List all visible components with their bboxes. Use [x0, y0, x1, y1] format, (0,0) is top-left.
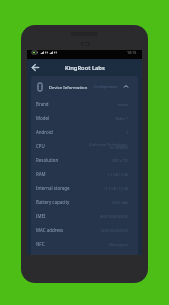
staticText: Redmi 7 — [115, 116, 128, 120]
staticText: Battery capacity — [36, 199, 70, 205]
staticText: Qualcomm Technologies, Inc SDM450 — [88, 142, 128, 150]
staticText: 1080 x 720 — [111, 158, 128, 162]
staticText: 9 — [126, 130, 128, 134]
staticText: Android — [36, 129, 53, 135]
button[interactable]: Resolution — [31, 153, 138, 167]
button[interactable]: MAC address — [31, 223, 138, 237]
staticText: Device Information — [49, 84, 88, 90]
button[interactable]: Device Information — [31, 76, 138, 97]
staticText: NFC — [36, 241, 45, 247]
staticText: 10:15 — [127, 50, 137, 55]
staticText: CPU — [36, 143, 45, 149]
button[interactable]: RAM — [31, 167, 138, 181]
staticText: 11.7 GB / 16 GB — [103, 186, 128, 190]
staticText: 4000 mAh — [112, 200, 128, 204]
staticText: 1.3 GB / 2 GB — [107, 172, 128, 176]
staticText: Brand — [36, 101, 49, 107]
staticText: Model — [36, 115, 50, 121]
button[interactable]: CPU — [31, 139, 138, 153]
button[interactable]: Internal storage — [31, 181, 138, 195]
button[interactable]: Model — [31, 111, 138, 125]
staticText: KingRoot Labs — [65, 64, 105, 72]
staticText: Resolution — [36, 157, 59, 163]
button[interactable]: Android — [31, 125, 138, 139]
staticText: 860610040142090 — [99, 214, 128, 218]
staticText: Internal storage — [36, 185, 70, 191]
staticText: Configuration — [94, 84, 118, 89]
staticText: 02:00:00:00:00:00 — [100, 228, 128, 232]
staticText: RAM — [36, 171, 46, 177]
staticText: MAC address — [36, 227, 64, 233]
staticText: xiaomi — [117, 102, 128, 106]
button[interactable]: Brand — [31, 97, 138, 111]
button[interactable]: NFC — [31, 237, 138, 251]
button[interactable]: IMEI — [31, 209, 138, 223]
button[interactable]: Back — [30, 62, 41, 73]
button[interactable]: Battery capacity — [31, 195, 138, 209]
staticText: IMEI — [36, 213, 46, 219]
staticText: Not support — [109, 242, 128, 246]
